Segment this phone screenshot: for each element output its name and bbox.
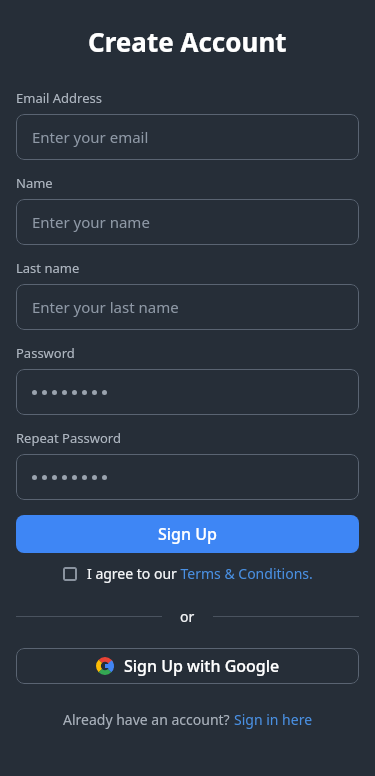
staticText: Create Account [88,24,287,59]
staticText: Last name [16,259,80,277]
staticText: Repeat Password [16,429,121,447]
staticText: I agree to our Terms & Conditions. [87,564,313,583]
button[interactable]: Enter your last name [16,284,359,330]
button[interactable]: Sign Up with Google [16,648,359,684]
staticText: Name [16,174,53,192]
staticText: or [180,607,195,626]
staticText: Sign Up [158,523,217,545]
staticText: Password [16,344,75,362]
staticText: Enter your email [32,127,149,147]
button[interactable]: Sign Up [16,515,359,553]
staticText: Sign in here [234,710,313,729]
button[interactable]: Sign in here [234,710,313,729]
button[interactable]: I agree to our Terms & Conditions. [16,564,359,583]
staticText: Enter your last name [32,297,179,317]
button[interactable] [16,454,359,500]
staticText: Email Address [16,89,102,107]
staticText: Enter your name [32,212,150,232]
staticText: Already have an account? [63,710,234,729]
button[interactable]: Enter your email [16,114,359,160]
button[interactable]: Enter your name [16,199,359,245]
button[interactable] [16,369,359,415]
staticText: Sign Up with Google [124,655,280,677]
